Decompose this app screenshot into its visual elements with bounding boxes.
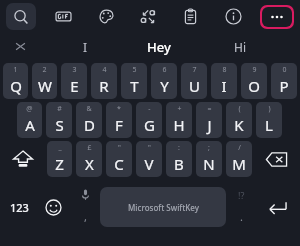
button[interactable]: Translate — [133, 3, 163, 30]
button[interactable]: Backspace — [254, 141, 299, 177]
staticText: R — [99, 76, 109, 96]
button[interactable]: 3 — [61, 63, 87, 99]
staticText: @ — [26, 104, 33, 114]
button[interactable]: + — [166, 102, 192, 138]
staticText: A — [25, 115, 35, 135]
staticText: S — [55, 115, 64, 135]
staticText: 5 — [132, 65, 137, 75]
staticText: Z — [55, 154, 64, 174]
button[interactable]: GIF — [48, 3, 78, 30]
staticText: 3 — [72, 65, 77, 75]
button[interactable]: _ — [47, 141, 72, 177]
button[interactable]: Emoji — [37, 181, 70, 233]
button[interactable]: Clipboard — [175, 3, 205, 30]
staticText: Y — [160, 76, 169, 96]
staticText: Hi — [234, 39, 246, 55]
staticText: H — [173, 115, 185, 135]
button[interactable]: 1 — [3, 63, 28, 99]
staticText: C — [114, 154, 124, 174]
staticText: B — [174, 154, 184, 174]
button[interactable]: & — [76, 102, 102, 138]
button[interactable]: # — [46, 102, 72, 138]
staticText: + — [177, 104, 182, 114]
button[interactable]: Voice input, comma — [70, 181, 100, 233]
staticText: U — [189, 76, 200, 96]
staticText: " — [148, 143, 151, 153]
staticText: : — [178, 143, 180, 153]
staticText: I — [83, 39, 88, 55]
button[interactable]: @ — [17, 102, 42, 138]
button[interactable]: 8 — [211, 63, 237, 99]
button[interactable]: ( — [226, 102, 252, 138]
staticText: # — [57, 104, 62, 114]
staticText: G — [144, 115, 155, 135]
staticText: 2 — [42, 65, 47, 75]
button[interactable]: " — [136, 141, 162, 177]
staticText: = — [207, 104, 212, 114]
staticText: V — [144, 154, 154, 174]
button[interactable]: ; — [196, 141, 222, 177]
staticText: X — [85, 154, 94, 174]
staticText: _ — [58, 143, 62, 153]
staticText: - — [148, 104, 151, 114]
staticText: O — [248, 76, 260, 96]
staticText: 7 — [192, 65, 197, 75]
staticText: 8 — [222, 65, 227, 75]
staticText: N — [203, 154, 215, 174]
staticText: T — [130, 76, 139, 96]
staticText: 123 — [10, 200, 29, 215]
button[interactable]: Period — [226, 181, 256, 233]
button[interactable]: Enter — [256, 181, 298, 233]
staticText: Hey — [147, 38, 171, 56]
button[interactable]: Microsoft SwiftKey — [100, 187, 226, 227]
staticText: ; — [208, 143, 210, 153]
staticText: 6 — [162, 65, 167, 75]
staticText: E — [70, 76, 79, 96]
staticText: 1 — [13, 65, 18, 75]
button[interactable]: Search — [6, 3, 36, 30]
staticText: / — [238, 143, 241, 153]
button[interactable]: * — [106, 102, 132, 138]
staticText: Q — [10, 76, 22, 96]
staticText: W — [38, 76, 52, 96]
staticText: M — [232, 154, 246, 174]
button[interactable]: 6 — [151, 63, 177, 99]
button[interactable]: Shift — [1, 141, 45, 177]
staticText: 4 — [102, 65, 107, 75]
button[interactable]: Hey — [118, 33, 200, 60]
button[interactable]: 5 — [121, 63, 147, 99]
staticText: 0 — [282, 65, 287, 75]
button[interactable]: - — [136, 102, 162, 138]
staticText: ) — [268, 104, 271, 114]
button[interactable]: 7 — [181, 63, 207, 99]
staticText: D — [84, 115, 95, 135]
button[interactable]: I — [40, 33, 130, 60]
staticText: & — [86, 104, 92, 114]
button[interactable]: / — [226, 141, 252, 177]
button[interactable]: £ — [76, 141, 102, 177]
staticText: ( — [238, 104, 241, 114]
button[interactable]: Stickers — [91, 3, 121, 30]
button[interactable]: 4 — [91, 63, 117, 99]
button[interactable]: 9 — [241, 63, 267, 99]
staticText: Microsoft SwiftKey — [128, 202, 199, 213]
staticText: " — [118, 143, 121, 153]
staticText: J — [207, 115, 212, 135]
staticText: I — [221, 76, 227, 96]
staticText: K — [234, 115, 244, 135]
button[interactable]: 123 — [2, 181, 37, 233]
button[interactable]: Close suggestions — [0, 33, 40, 60]
button[interactable]: : — [166, 141, 192, 177]
button[interactable]: 2 — [32, 63, 57, 99]
button[interactable]: ) — [256, 102, 282, 138]
button[interactable]: 0 — [271, 63, 297, 99]
staticText: F — [115, 115, 123, 135]
button[interactable]: Hi — [200, 33, 280, 60]
button[interactable]: More options — [262, 7, 292, 27]
staticText: £ — [87, 143, 92, 153]
button[interactable]: " — [106, 141, 132, 177]
staticText: . — [240, 209, 243, 224]
button[interactable]: = — [196, 102, 222, 138]
button[interactable]: Info — [218, 3, 248, 30]
staticText: , — [84, 209, 87, 224]
